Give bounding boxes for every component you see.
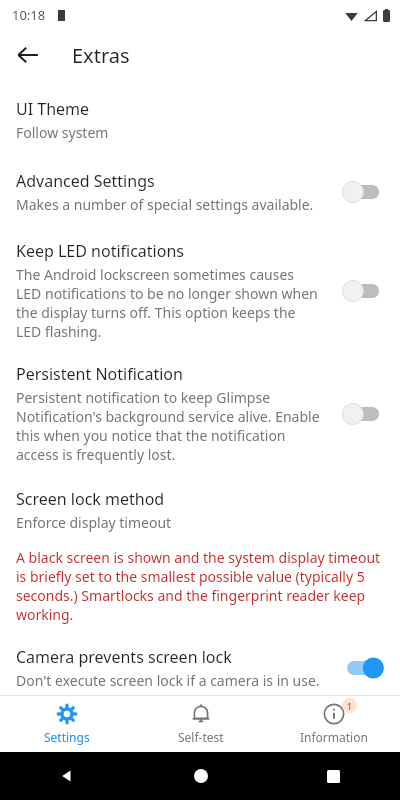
staticText: Don't execute screen lock if a camera is… [16, 671, 320, 690]
staticText: UI Theme [16, 98, 90, 120]
staticText: Notification's background service alive.… [16, 407, 320, 426]
staticText: Settings [44, 729, 90, 745]
button[interactable]: Back [0, 752, 134, 800]
staticText: The Android lockscreen sometimes causes [16, 265, 294, 284]
button[interactable]: 1 [267, 696, 400, 752]
button[interactable]: Settings [0, 696, 134, 752]
staticText: Keep LED notifications [16, 240, 184, 262]
staticText: access is frequently lost. [16, 445, 176, 464]
staticText: Self-test [178, 729, 224, 745]
staticText: the display turns off. This option keeps… [16, 303, 296, 322]
staticText: Persistent Notification [16, 363, 183, 385]
staticText: A black screen is shown and the system d… [16, 548, 381, 567]
staticText: Persistent notification to keep Glimpse [16, 388, 271, 407]
button[interactable]: Recents [267, 752, 400, 800]
button[interactable]: Home [134, 752, 267, 800]
staticText: 1 [347, 700, 353, 712]
staticText: Camera prevents screen lock [16, 646, 232, 668]
button[interactable]: Screen lock method [0, 488, 400, 624]
staticText: is briefly set to the smallest possible … [16, 567, 365, 586]
staticText: seconds.) Smartlocks and the fingerprint… [16, 586, 366, 605]
button[interactable]: Toggle [340, 180, 384, 204]
button[interactable]: Self-test [134, 696, 267, 752]
button[interactable]: Advanced Settings [0, 170, 400, 214]
staticText: this when you notice that the notificati… [16, 426, 286, 445]
staticText: Follow system [16, 123, 109, 142]
staticText: Enforce display timeout [16, 513, 172, 532]
staticText: Extras [72, 42, 130, 69]
staticText: Information [300, 729, 368, 745]
button[interactable]: Back [8, 35, 48, 75]
button[interactable]: Camera prevents screen lock [0, 646, 400, 690]
staticText: LED flashing. [16, 322, 102, 341]
button[interactable]: Toggle [340, 279, 384, 303]
staticText: 10:18 [12, 6, 46, 24]
button[interactable]: Toggle [340, 402, 384, 426]
staticText: Makes a number of special settings avail… [16, 195, 314, 214]
button[interactable]: Keep LED notifications [0, 240, 400, 341]
staticText: working. [16, 605, 74, 624]
staticText: Screen lock method [16, 488, 165, 510]
staticText: LED notifications to be no longer shown … [16, 284, 318, 303]
staticText: Advanced Settings [16, 170, 155, 192]
button[interactable]: Toggle [340, 656, 384, 680]
button[interactable]: Persistent Notification [0, 363, 400, 464]
button[interactable]: UI Theme [0, 98, 400, 142]
